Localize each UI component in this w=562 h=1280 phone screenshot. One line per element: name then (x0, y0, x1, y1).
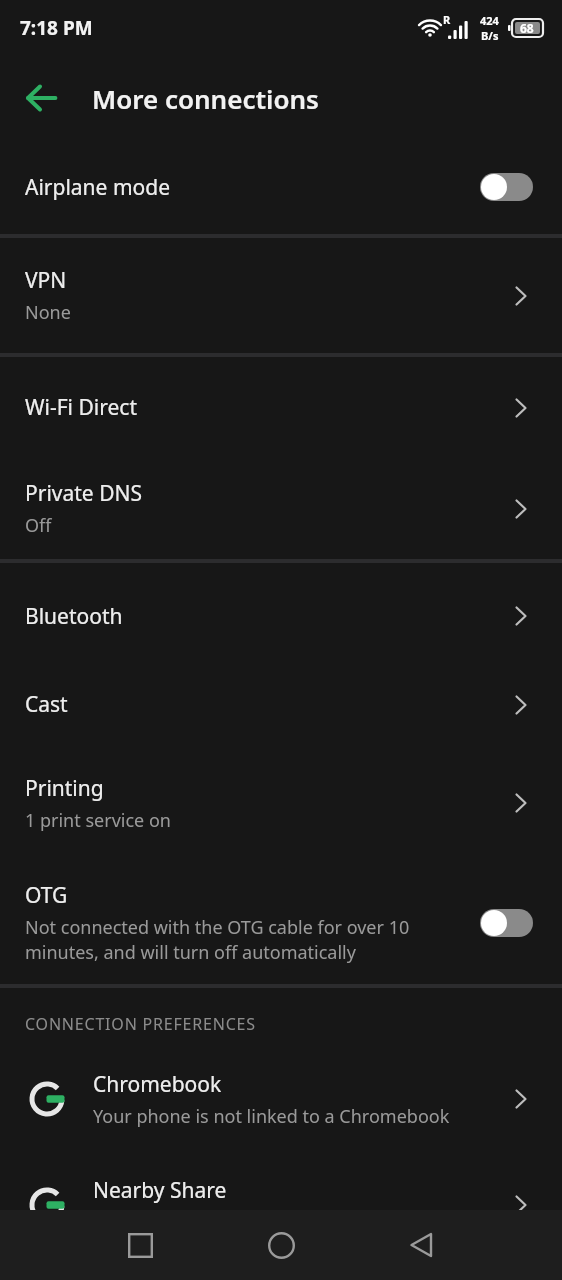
button[interactable]: Private DNS (0, 458, 562, 559)
button[interactable] (116, 1221, 164, 1269)
button[interactable] (257, 1221, 305, 1269)
staticText: Chromebook (93, 1070, 222, 1099)
staticText: Your phone is not linked to a Chromebook (93, 1104, 450, 1129)
staticText: B/s (481, 28, 499, 43)
button[interactable]: Printing (0, 745, 562, 861)
staticText: Off (25, 513, 52, 538)
staticText: R (443, 12, 451, 27)
button[interactable]: Airplane mode (0, 140, 562, 234)
button[interactable]: Wi-Fi Direct (0, 357, 562, 458)
staticText: Visible to nearby devices while in use (93, 1210, 405, 1235)
button[interactable] (480, 909, 533, 937)
button[interactable]: Chromebook (0, 1060, 562, 1138)
staticText: Bluetooth (25, 602, 123, 631)
button[interactable] (397, 1221, 445, 1269)
staticText: 68 (520, 20, 534, 36)
staticText: 1 print service on (25, 808, 171, 833)
staticText: None (25, 300, 71, 325)
staticText: VPN (25, 266, 67, 295)
staticText: Cast (25, 690, 68, 719)
staticText: OTG (25, 881, 68, 910)
staticText: Not connected with the OTG cable for ove… (25, 915, 410, 940)
staticText: 7:18 PM (20, 15, 93, 41)
staticText: 424 (480, 13, 499, 28)
button[interactable]: OTG (0, 861, 562, 984)
staticText: minutes, and will turn off automatically (25, 940, 356, 965)
button[interactable] (26, 83, 59, 113)
staticText: Wi-Fi Direct (25, 393, 137, 422)
staticText: More connections (92, 81, 319, 116)
staticText: CONNECTION PREFERENCES (25, 1013, 256, 1035)
staticText: Nearby Share (93, 1176, 227, 1205)
button[interactable]: Nearby Share (0, 1150, 562, 1260)
staticText: Printing (25, 774, 104, 803)
staticText: Airplane mode (25, 173, 171, 202)
button[interactable]: Bluetooth (0, 568, 562, 664)
staticText: Private DNS (25, 479, 142, 508)
button[interactable]: VPN (0, 238, 562, 353)
button[interactable]: Cast (0, 664, 562, 745)
button[interactable] (480, 173, 533, 201)
